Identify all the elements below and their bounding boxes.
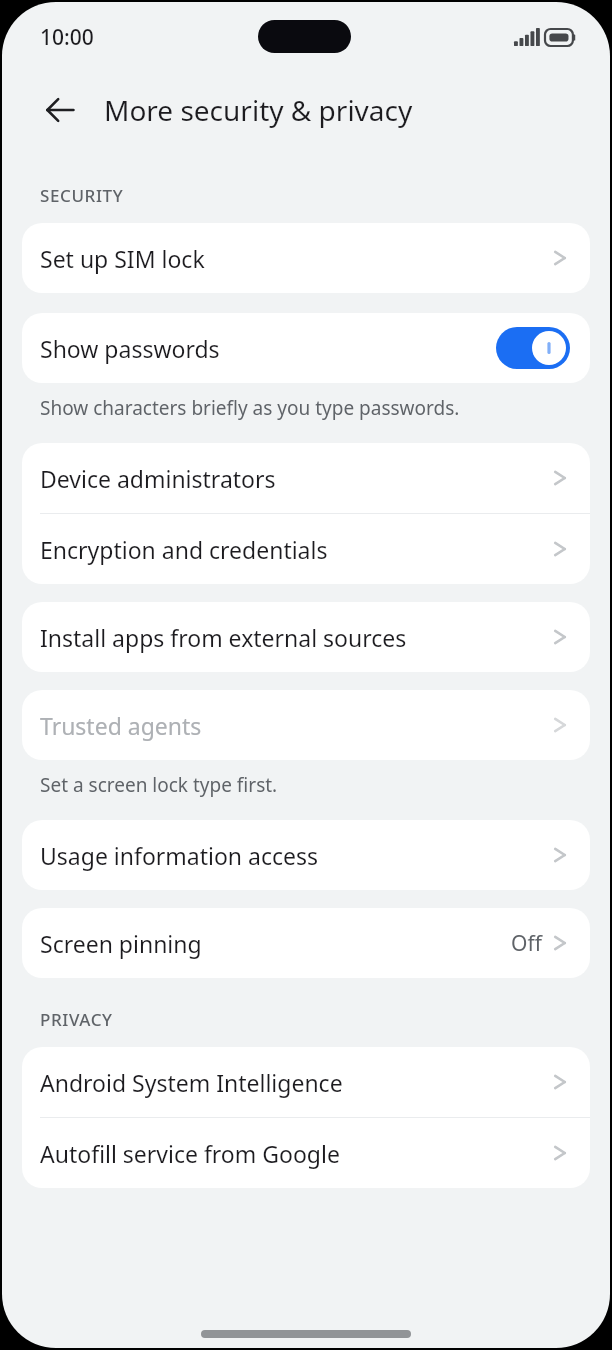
staticText: Show characters briefly as you type pass… xyxy=(40,395,460,421)
button[interactable]: Screen pinning xyxy=(22,908,590,978)
staticText: PRIVACY xyxy=(40,1008,113,1031)
staticText: Install apps from external sources xyxy=(40,622,550,653)
staticText: SECURITY xyxy=(40,184,124,207)
staticText: Off xyxy=(511,929,542,958)
staticText: Set a screen lock type first. xyxy=(40,772,278,798)
button[interactable]: Autofill service from Google xyxy=(22,1118,590,1188)
button[interactable]: Trusted agents xyxy=(22,690,590,760)
button[interactable]: Back xyxy=(32,82,88,138)
button[interactable]: Encryption and credentials xyxy=(22,514,590,584)
staticText: Usage information access xyxy=(40,840,550,871)
staticText: Trusted agents xyxy=(40,710,550,741)
button[interactable]: Show passwords toggle, on xyxy=(496,327,570,369)
staticText: Set up SIM lock xyxy=(40,243,550,274)
staticText: 10:00 xyxy=(40,23,94,52)
button[interactable]: Show passwords xyxy=(22,313,590,383)
staticText: Screen pinning xyxy=(40,928,511,959)
button[interactable]: Set up SIM lock xyxy=(22,223,590,293)
staticText: More security & privacy xyxy=(104,91,413,129)
staticText: Encryption and credentials xyxy=(40,534,550,565)
button[interactable]: Usage information access xyxy=(22,820,590,890)
staticText: Show passwords xyxy=(40,333,496,364)
button[interactable]: Android System Intelligence xyxy=(22,1047,590,1117)
staticText: Autofill service from Google xyxy=(40,1138,550,1169)
staticText: Device administrators xyxy=(40,463,550,494)
button[interactable]: Device administrators xyxy=(22,443,590,513)
button[interactable]: Install apps from external sources xyxy=(22,602,590,672)
staticText: Android System Intelligence xyxy=(40,1067,550,1098)
